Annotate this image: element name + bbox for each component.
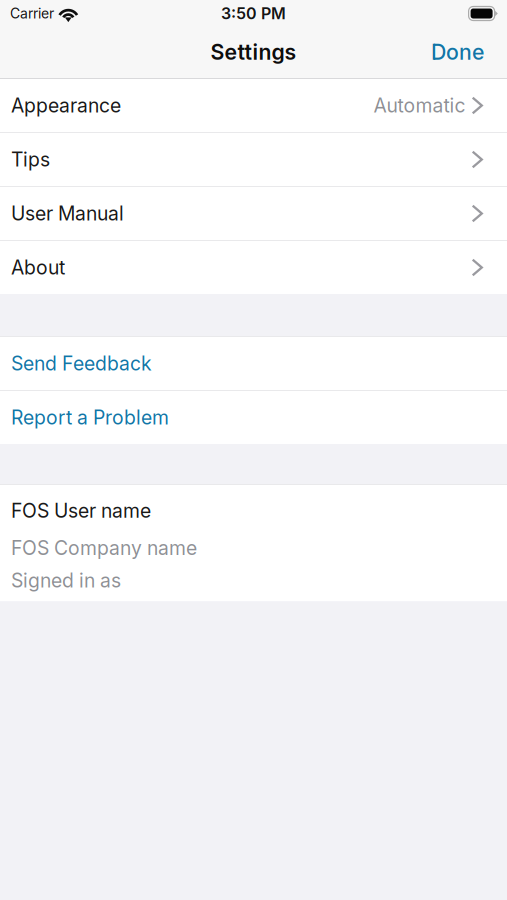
staticText: Tips <box>11 148 50 171</box>
staticText: Signed in as <box>11 569 121 592</box>
staticText: Appearance <box>11 94 121 117</box>
staticText: Send Feedback <box>11 352 152 375</box>
button[interactable]: Send Feedback <box>0 337 507 390</box>
button[interactable]: Tips <box>0 133 507 186</box>
button[interactable]: About <box>0 241 507 294</box>
staticText: User Manual <box>11 202 124 225</box>
staticText: About <box>11 256 65 279</box>
staticText: Report a Problem <box>11 406 169 429</box>
button[interactable]: User Manual <box>0 187 507 240</box>
staticText: Done <box>431 39 484 65</box>
staticText: Carrier <box>10 5 54 22</box>
staticText: Automatic <box>373 94 465 117</box>
staticText: FOS User name <box>11 499 151 522</box>
button[interactable]: Done <box>413 30 507 74</box>
button[interactable]: Report a Problem <box>0 391 507 444</box>
staticText: 3:50 PM <box>221 4 286 23</box>
staticText: Settings <box>210 39 296 65</box>
staticText: FOS Company name <box>11 536 197 560</box>
button[interactable]: Appearance <box>0 79 507 132</box>
